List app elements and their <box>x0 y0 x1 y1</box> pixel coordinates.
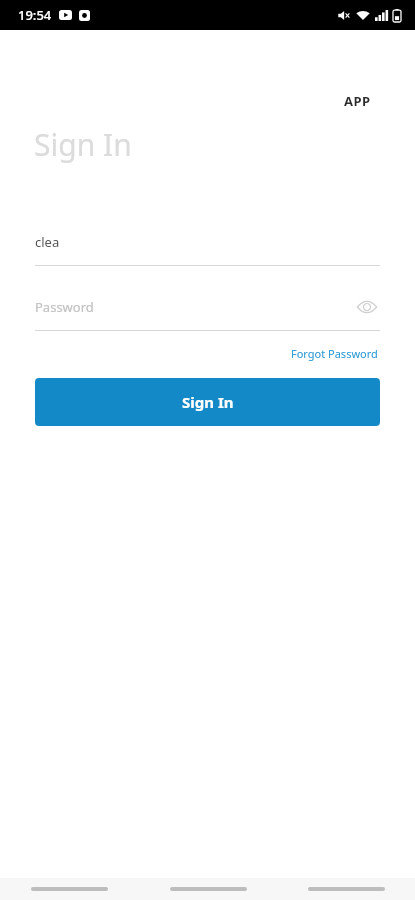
staticText: Sign In <box>34 124 132 165</box>
staticText: Forgot Password <box>291 346 378 361</box>
button[interactable]: Recents <box>277 878 415 900</box>
staticText: Password <box>35 298 94 316</box>
button[interactable]: Home <box>139 878 277 900</box>
button[interactable]: Password <box>35 292 380 322</box>
button[interactable]: Sign In <box>35 378 380 426</box>
button[interactable]: APP <box>340 88 375 114</box>
button[interactable]: Forgot Password <box>289 343 380 364</box>
staticText: 19:54 <box>18 6 52 24</box>
button[interactable]: Back <box>0 878 139 900</box>
button[interactable]: Show password <box>354 294 380 320</box>
staticText: APP <box>344 92 371 110</box>
staticText: clea <box>35 233 60 251</box>
button[interactable]: clea <box>35 227 380 257</box>
staticText: Sign In <box>182 392 234 412</box>
